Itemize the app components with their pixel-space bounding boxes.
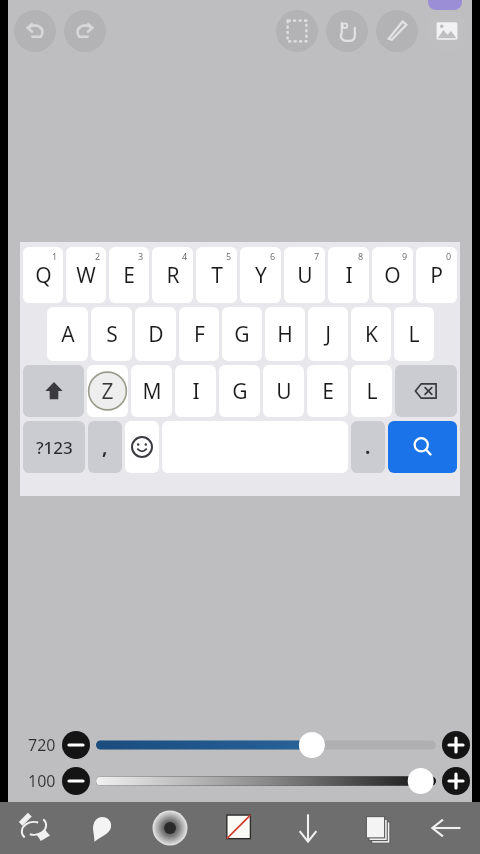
staticText: F: [194, 320, 205, 349]
staticText: S: [106, 320, 118, 349]
button[interactable]: G: [219, 365, 260, 417]
button[interactable]: G: [222, 307, 262, 361]
button[interactable]: Transform: [326, 10, 368, 52]
button[interactable]: Decrease Opacity: [62, 767, 90, 795]
staticText: O: [384, 261, 401, 290]
button[interactable]: .: [351, 421, 385, 473]
staticText: 2: [95, 250, 101, 262]
button[interactable]: Brush size: [96, 730, 436, 760]
staticText: H: [277, 320, 293, 349]
staticText: 1: [52, 250, 58, 262]
button[interactable]: Opacity: [96, 766, 436, 796]
button[interactable]: Z: [87, 365, 128, 417]
button[interactable]: Emoji: [125, 421, 159, 473]
button[interactable]: H: [265, 307, 305, 361]
staticText: W: [76, 261, 96, 290]
staticText: P: [430, 261, 443, 290]
staticText: 7: [314, 250, 320, 262]
button[interactable]: W: [66, 247, 106, 303]
staticText: 100: [28, 770, 56, 792]
button[interactable]: Increase Opacity: [442, 767, 470, 795]
staticText: U: [276, 377, 292, 406]
button[interactable]: S: [91, 307, 132, 361]
button[interactable]: ,: [88, 421, 122, 473]
button[interactable]: U: [284, 247, 325, 303]
staticText: R: [166, 261, 180, 290]
staticText: E: [322, 377, 334, 406]
staticText: 3: [138, 250, 144, 262]
button[interactable]: Select: [276, 10, 318, 52]
button[interactable]: Increase Brush size: [442, 731, 470, 759]
staticText: G: [234, 320, 250, 349]
button[interactable]: L: [351, 365, 392, 417]
staticText: 6: [270, 250, 276, 262]
staticText: 5: [226, 250, 232, 262]
staticText: E: [123, 261, 135, 290]
button[interactable]: I: [175, 365, 216, 417]
staticText: I: [345, 261, 353, 290]
button[interactable]: Color: [204, 802, 273, 854]
staticText: ?123: [36, 436, 73, 459]
staticText: T: [211, 261, 223, 290]
button[interactable]: L: [394, 307, 434, 361]
button[interactable]: Decrease Brush size: [62, 731, 90, 759]
staticText: ,: [102, 434, 108, 460]
staticText: .: [365, 434, 371, 460]
staticText: 9: [402, 250, 408, 262]
button[interactable]: Brush / Eraser swap: [0, 802, 68, 854]
button[interactable]: O: [372, 247, 413, 303]
button[interactable]: D: [135, 307, 176, 361]
button[interactable]: T: [196, 247, 237, 303]
button[interactable]: R: [152, 247, 193, 303]
button[interactable]: Backspace: [395, 365, 457, 417]
button[interactable]: J: [308, 307, 348, 361]
button[interactable]: Back: [411, 802, 480, 854]
button[interactable]: K: [351, 307, 391, 361]
button[interactable]: U: [263, 365, 304, 417]
button[interactable]: E: [109, 247, 149, 303]
button[interactable]: Brush: [68, 802, 136, 854]
button[interactable]: A: [47, 307, 88, 361]
staticText: 720: [28, 734, 56, 756]
button[interactable]: Y: [240, 247, 281, 303]
button[interactable]: ?123: [23, 421, 85, 473]
staticText: J: [325, 320, 331, 349]
button[interactable]: Gallery: [426, 10, 468, 52]
staticText: K: [365, 320, 378, 349]
staticText: A: [61, 320, 75, 349]
staticText: M: [142, 377, 162, 406]
staticText: U: [297, 261, 313, 290]
button[interactable]: Shift: [23, 365, 84, 417]
button[interactable]: Q: [23, 247, 63, 303]
staticText: Z: [101, 377, 114, 406]
staticText: 0: [446, 250, 452, 262]
staticText: 8: [358, 250, 364, 262]
button[interactable]: F: [179, 307, 219, 361]
button[interactable]: Pen: [376, 10, 418, 52]
staticText: G: [232, 377, 248, 406]
staticText: 4: [182, 250, 188, 262]
staticText: Y: [255, 261, 267, 290]
button[interactable]: Layers: [342, 802, 411, 854]
button[interactable]: Import: [273, 802, 342, 854]
staticText: L: [408, 320, 420, 349]
button[interactable]: Undo: [14, 10, 56, 52]
button[interactable]: E: [307, 365, 348, 417]
staticText: L: [366, 377, 378, 406]
button[interactable]: Brush size 720: [136, 802, 204, 854]
button[interactable]: M: [131, 365, 172, 417]
staticText: I: [192, 377, 200, 406]
button[interactable]: I: [328, 247, 369, 303]
button[interactable]: Redo: [64, 10, 106, 52]
staticText: D: [148, 320, 164, 349]
staticText: Q: [35, 261, 52, 290]
button[interactable]: P: [416, 247, 457, 303]
button[interactable]: Search: [388, 421, 457, 473]
